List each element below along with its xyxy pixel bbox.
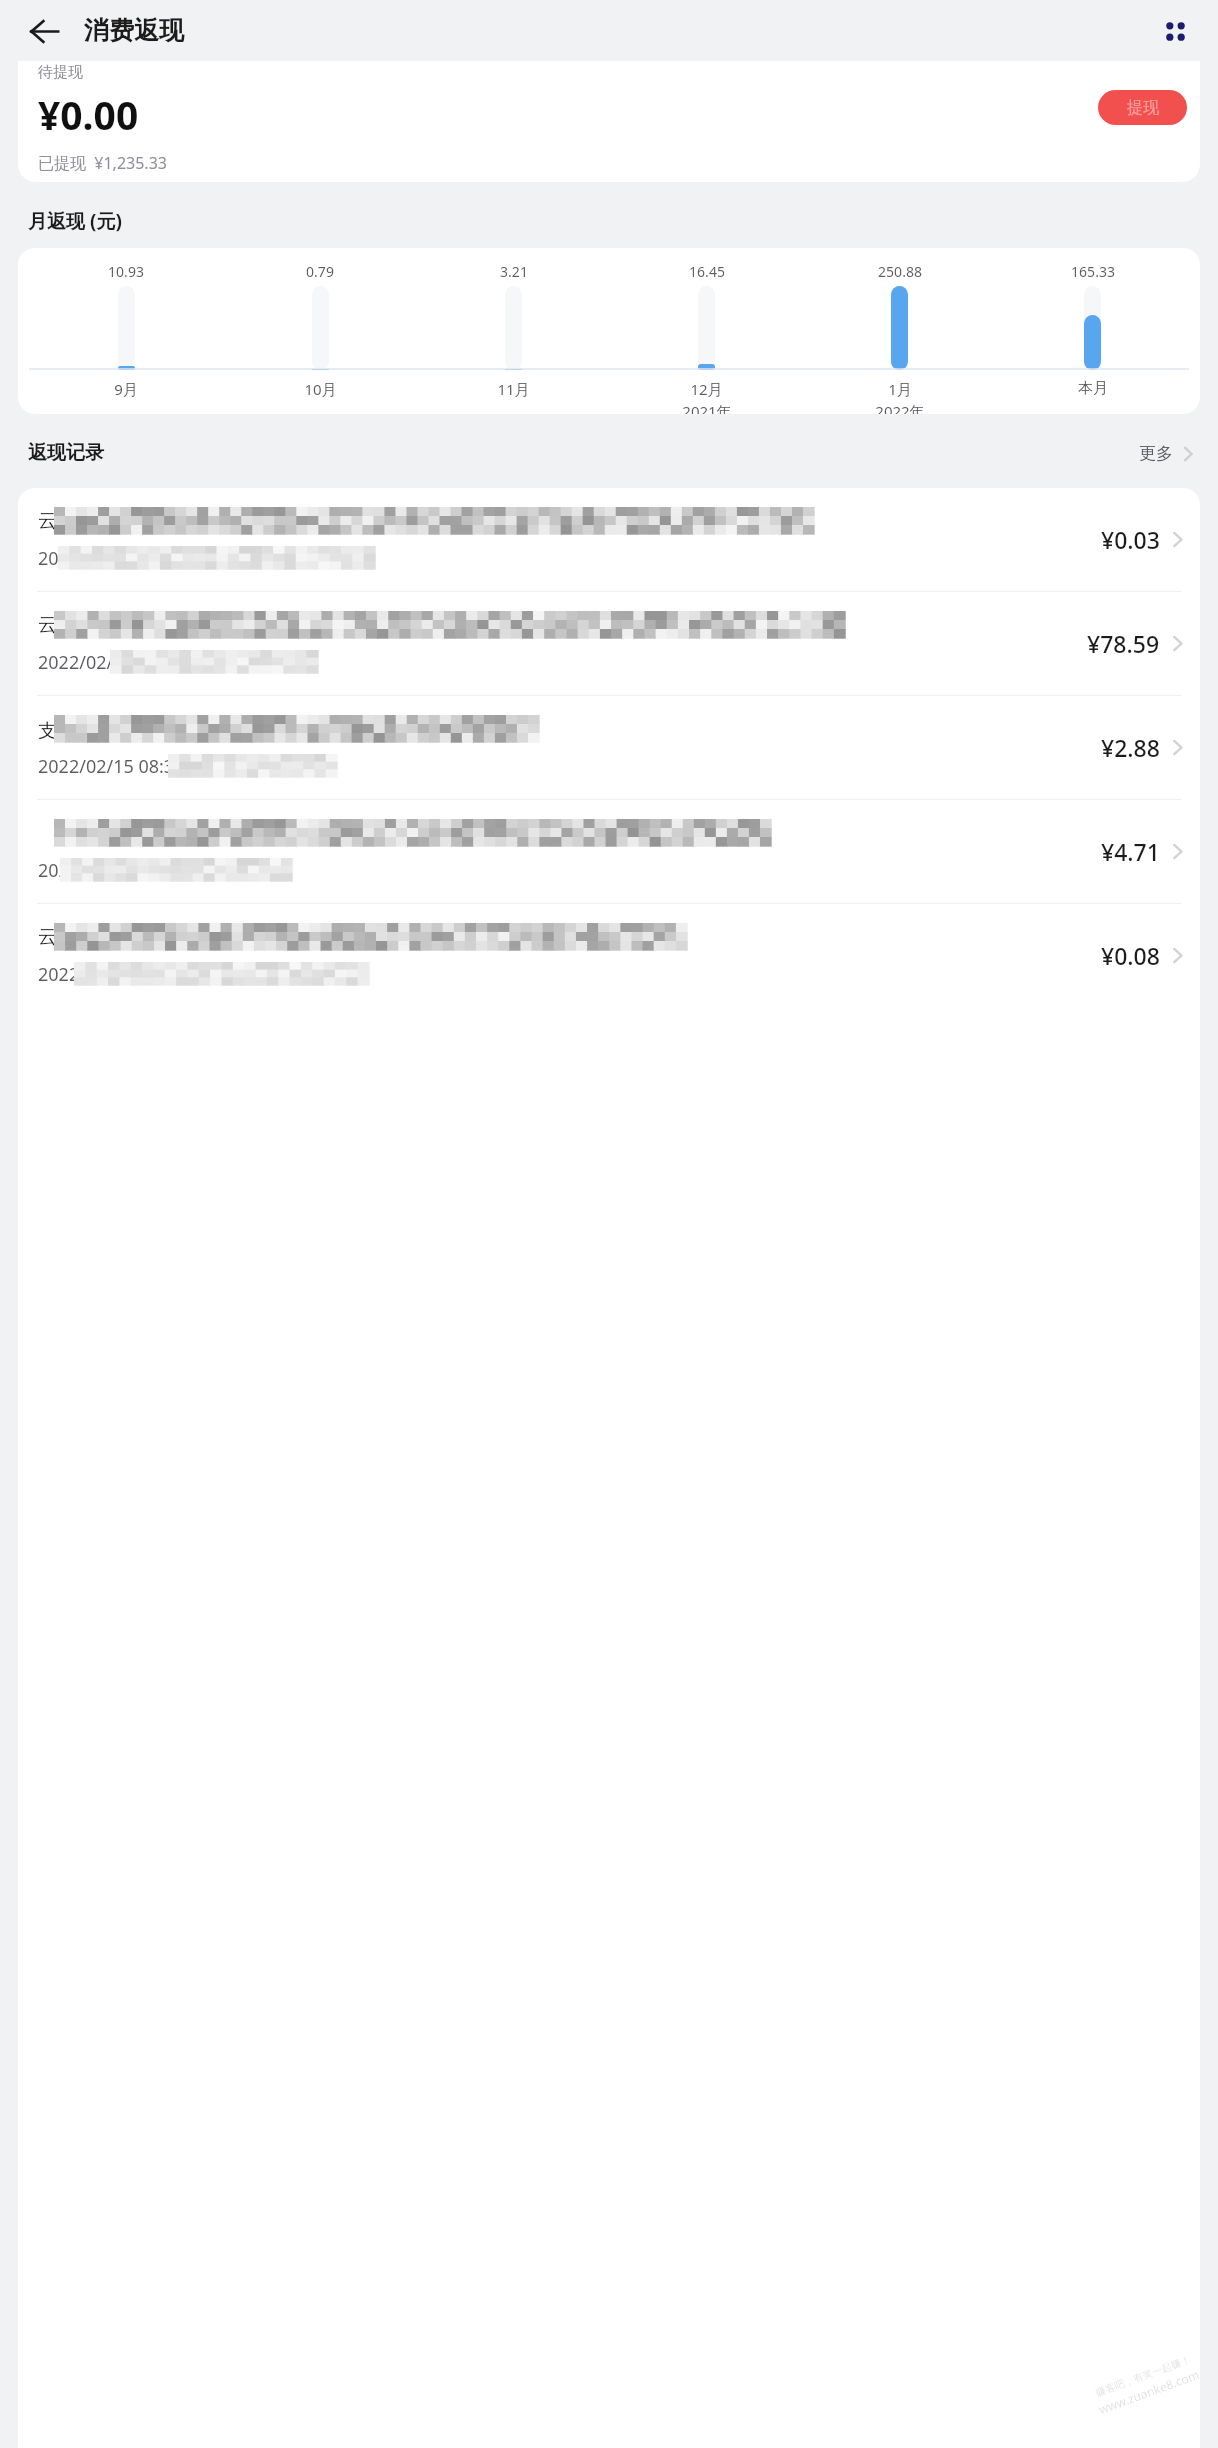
staticText: ¥2.88 bbox=[1101, 732, 1160, 763]
staticText: www.zuanke8.com bbox=[1096, 2366, 1201, 2417]
staticText: 16.45 bbox=[689, 262, 725, 281]
staticText: 月返现 (元) bbox=[28, 208, 122, 234]
staticText: 165.33 bbox=[1071, 262, 1115, 281]
staticText: 3.21 bbox=[500, 262, 528, 281]
staticText: 赚客吧，有奖一起赚！ bbox=[1094, 2353, 1192, 2399]
staticText: ¥0.08 bbox=[1101, 940, 1160, 971]
staticText: 2022/02/15 08:34:48 bbox=[38, 754, 210, 778]
staticText: 云 bbox=[38, 509, 57, 533]
staticText: 1月 bbox=[888, 379, 912, 399]
staticText: 2021年 bbox=[682, 401, 732, 414]
staticText: 消费返现 bbox=[84, 15, 184, 46]
staticText: 9月 bbox=[114, 379, 138, 399]
button[interactable]: 更多 bbox=[1131, 438, 1205, 469]
staticText: 支付宝 支付折扣 bbox=[38, 717, 186, 743]
staticText: 10月 bbox=[304, 379, 337, 399]
staticText: 2022/02/14 21:06:35 bbox=[38, 858, 210, 882]
button[interactable]: 云 bbox=[18, 592, 1200, 695]
staticText: ¥0.00 bbox=[38, 88, 139, 141]
button[interactable]: Back bbox=[18, 5, 70, 57]
staticText: 2022年 bbox=[875, 401, 925, 414]
staticText: 250.88 bbox=[878, 262, 922, 281]
staticText: 已提现 ¥1,235.33 bbox=[38, 152, 167, 174]
staticText: 本月 bbox=[1078, 379, 1108, 398]
staticText: 云 bbox=[38, 613, 57, 637]
staticText: ¥0.03 bbox=[1101, 524, 1160, 555]
staticText: ¥78.59 bbox=[1087, 628, 1160, 659]
staticText: 12月 bbox=[690, 379, 723, 399]
staticText: 云闪 bbox=[38, 925, 76, 949]
staticText: 2022/02/18 09:33 bbox=[38, 546, 185, 570]
button[interactable]: More options bbox=[1148, 4, 1202, 58]
staticText: 提现 bbox=[1127, 98, 1159, 118]
button[interactable]: 云 bbox=[18, 488, 1200, 591]
staticText: 返现记录 bbox=[28, 441, 104, 465]
staticText: 11月 bbox=[497, 379, 530, 399]
button[interactable]: 云闪 bbox=[18, 904, 1200, 1007]
staticText: 2022/02/16 08:12 bbox=[38, 650, 185, 674]
staticText: 0.79 bbox=[306, 262, 334, 281]
button[interactable]: 提现 bbox=[1098, 90, 1187, 125]
staticText: 10.93 bbox=[108, 262, 144, 281]
staticText: 2022/02/13 19:20:11 bbox=[38, 962, 210, 986]
button[interactable]: 2022/02/14 21:06:35 bbox=[18, 800, 1200, 903]
staticText: ¥4.71 bbox=[1101, 836, 1160, 867]
staticText: 待提现 bbox=[38, 63, 83, 82]
button[interactable]: 支付宝 支付折扣 bbox=[18, 696, 1200, 799]
staticText: 更多 bbox=[1139, 443, 1173, 464]
